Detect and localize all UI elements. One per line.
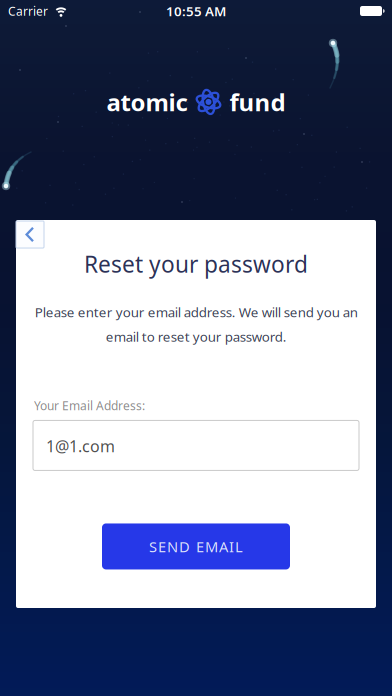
staticText: fund bbox=[229, 86, 285, 118]
staticText: Please enter your email address. We will… bbox=[34, 303, 357, 345]
staticText: atomic bbox=[106, 86, 187, 118]
staticText: Reset your password bbox=[84, 249, 308, 279]
staticText: SEND EMAIL bbox=[149, 537, 243, 556]
staticText: Carrier bbox=[8, 3, 48, 19]
staticText: 10:55 AM bbox=[166, 2, 226, 20]
button[interactable]: Back bbox=[16, 221, 44, 248]
button[interactable]: SEND EMAIL bbox=[102, 523, 290, 569]
staticText: 1@1.com bbox=[46, 435, 115, 457]
staticText: Your Email Address: bbox=[34, 397, 145, 413]
